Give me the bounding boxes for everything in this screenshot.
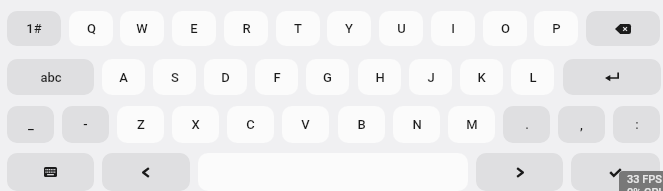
staticText: O [501,21,510,36]
button[interactable]: N [393,106,440,143]
button[interactable]: C [227,106,274,143]
button[interactable]: D [204,59,247,95]
staticText: L [529,70,537,85]
button[interactable]: , [558,106,605,143]
staticText: Z [137,117,145,132]
button[interactable]: F [255,59,298,95]
button[interactable]: X [172,106,219,143]
staticText: . [525,117,529,132]
staticText: F [273,70,281,85]
staticText: K [477,70,486,85]
button[interactable]: K [460,59,503,95]
staticText: 33 FPS [627,173,662,186]
staticText: - [83,117,88,132]
button[interactable]: J [409,59,452,95]
button[interactable]: _ [7,106,54,143]
button[interactable]: Switch keyboard [7,153,94,191]
button[interactable]: Done [571,153,660,191]
button[interactable]: . [503,106,550,143]
staticText: E [190,21,198,36]
button[interactable]: Previous [102,153,190,191]
staticText: V [301,117,310,132]
button[interactable]: M [448,106,495,143]
button[interactable]: I [431,11,475,46]
staticText: T [294,21,302,36]
button[interactable]: H [358,59,401,95]
staticText: D [221,70,230,85]
button[interactable]: Backspace [586,11,660,46]
staticText: : [635,117,639,132]
button[interactable]: R [224,11,268,46]
button[interactable]: S [153,59,196,95]
button[interactable]: Q [69,11,113,46]
button[interactable]: P [534,11,578,46]
button[interactable]: : [613,106,660,143]
staticText: _ [28,117,34,132]
button[interactable]: abc [7,59,94,95]
staticText: W [136,21,148,36]
button[interactable]: U [379,11,423,46]
button[interactable]: - [62,106,109,143]
staticText: R [242,21,251,36]
button[interactable]: W [120,11,164,46]
button[interactable]: G [306,59,349,95]
button[interactable]: V [282,106,329,143]
staticText: 0% GPU [627,186,663,191]
staticText: B [357,117,366,132]
button[interactable]: B [338,106,385,143]
staticText: abc [40,70,62,85]
staticText: H [375,70,385,85]
button[interactable]: E [172,11,216,46]
staticText: P [552,21,561,36]
button[interactable]: Z [117,106,164,143]
staticText: , [580,117,583,132]
button[interactable]: L [511,59,554,95]
button[interactable]: Next [476,153,563,191]
staticText: U [397,21,406,36]
staticText: X [191,117,200,132]
staticText: A [119,70,128,85]
staticText: G [323,70,332,85]
button[interactable]: 1# [7,11,61,46]
button[interactable]: O [483,11,527,46]
staticText: I [451,21,455,36]
staticText: S [171,70,179,85]
staticText: M [466,117,478,132]
button[interactable]: T [276,11,320,46]
staticText: J [427,70,435,85]
staticText: C [246,117,255,132]
staticText: 1# [26,21,42,36]
staticText: Q [87,21,96,36]
staticText: Y [345,21,353,36]
button[interactable]: Y [327,11,371,46]
staticText: N [412,117,422,132]
button[interactable]: A [102,59,145,95]
button[interactable]: Enter [563,59,661,95]
